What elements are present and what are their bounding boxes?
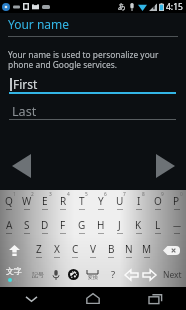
staticText: 9 xyxy=(161,191,164,198)
button[interactable]: J xyxy=(110,214,129,238)
staticText: First xyxy=(13,76,38,92)
button[interactable]: Move cursor left xyxy=(123,262,140,287)
button[interactable]: 4 xyxy=(54,190,72,214)
button[interactable]: 6 xyxy=(91,190,110,214)
button[interactable]: Hide keyboard xyxy=(0,287,62,310)
staticText: W xyxy=(22,194,32,208)
staticText: 8 xyxy=(142,191,145,198)
button[interactable]: Previous xyxy=(5,147,37,184)
staticText: 7 xyxy=(123,191,126,198)
staticText: 1 xyxy=(13,191,16,198)
button[interactable]: 2 xyxy=(18,190,36,214)
button[interactable]: A xyxy=(0,214,18,238)
staticText: B xyxy=(108,242,115,256)
staticText: T xyxy=(79,194,85,208)
button[interactable]: Z xyxy=(29,238,48,262)
staticText: Next xyxy=(163,269,182,281)
button[interactable]: 変換 xyxy=(82,262,103,287)
button[interactable]: Recent apps xyxy=(124,287,186,310)
staticText: R xyxy=(60,194,67,208)
button[interactable]: 7 xyxy=(110,190,129,214)
staticText: Z xyxy=(36,242,42,256)
staticText: 変換 xyxy=(88,274,98,280)
button[interactable]: L xyxy=(148,214,167,238)
staticText: X xyxy=(54,242,60,256)
staticText: Your name is used to personalize your ph… xyxy=(8,49,159,70)
staticText: 2 xyxy=(31,191,34,198)
button[interactable]: B xyxy=(102,238,120,262)
button[interactable]: F xyxy=(54,214,72,238)
staticText: G xyxy=(78,218,86,232)
button[interactable]: 3 xyxy=(36,190,54,214)
button[interactable]: X xyxy=(48,238,66,262)
staticText: 3 xyxy=(49,191,52,198)
button[interactable]: 0 xyxy=(167,190,186,214)
button[interactable]: 記号 xyxy=(28,262,47,287)
staticText: E xyxy=(42,194,48,208)
staticText: 0 xyxy=(180,191,183,198)
staticText: — xyxy=(173,220,181,231)
staticText: A xyxy=(6,218,13,232)
button[interactable]: K xyxy=(129,214,148,238)
button[interactable]: D xyxy=(36,214,54,238)
staticText: L xyxy=(155,218,161,232)
staticText: K xyxy=(135,218,142,232)
staticText: F xyxy=(60,218,66,232)
button[interactable]: Home xyxy=(62,287,124,310)
staticText: O xyxy=(154,194,162,208)
staticText: U xyxy=(116,194,124,208)
button[interactable]: Last xyxy=(9,103,176,120)
button[interactable]: Voice input xyxy=(47,262,64,287)
staticText: C xyxy=(72,242,79,256)
staticText: 4:15 xyxy=(166,1,183,13)
button[interactable]: Next xyxy=(149,147,181,184)
button[interactable]: 5 xyxy=(72,190,91,214)
staticText: Your name xyxy=(8,16,70,32)
button[interactable]: Change keyboard xyxy=(64,262,82,287)
staticText: H xyxy=(97,218,105,232)
button[interactable]: 9 xyxy=(148,190,167,214)
button[interactable]: V xyxy=(84,238,102,262)
staticText: 文字 xyxy=(6,266,22,276)
button[interactable]: M xyxy=(138,238,156,262)
button[interactable]: N xyxy=(120,238,138,262)
button[interactable]: 文字 xyxy=(0,262,28,287)
staticText: Q xyxy=(5,194,13,208)
staticText: I xyxy=(137,194,141,208)
button[interactable]: — xyxy=(167,214,186,238)
button[interactable]: S xyxy=(18,214,36,238)
button[interactable]: Shift xyxy=(0,238,29,262)
staticText: 記号 xyxy=(32,271,44,279)
button[interactable]: Delete xyxy=(156,238,186,262)
staticText: J xyxy=(118,218,121,232)
staticText: P xyxy=(173,194,180,208)
button[interactable]: ? xyxy=(103,262,123,287)
button[interactable]: Move cursor right xyxy=(140,262,159,287)
staticText: あ xyxy=(118,2,126,11)
staticText: N xyxy=(125,242,133,256)
staticText: Y xyxy=(98,194,104,208)
button[interactable]: 1 xyxy=(0,190,18,214)
staticText: ? xyxy=(111,268,116,281)
button[interactable]: C xyxy=(66,238,84,262)
staticText: Last xyxy=(12,103,37,119)
staticText: D xyxy=(41,218,49,232)
staticText: 4 xyxy=(67,191,70,198)
button[interactable]: 8 xyxy=(129,190,148,214)
staticText: 6 xyxy=(104,191,107,198)
button[interactable]: Next xyxy=(159,262,186,287)
staticText: 5 xyxy=(85,191,88,198)
button[interactable]: G xyxy=(72,214,91,238)
staticText: V xyxy=(90,242,96,256)
staticText: M xyxy=(142,242,152,256)
staticText: S xyxy=(24,218,30,232)
button[interactable]: H xyxy=(91,214,110,238)
button[interactable]: First xyxy=(9,76,176,94)
